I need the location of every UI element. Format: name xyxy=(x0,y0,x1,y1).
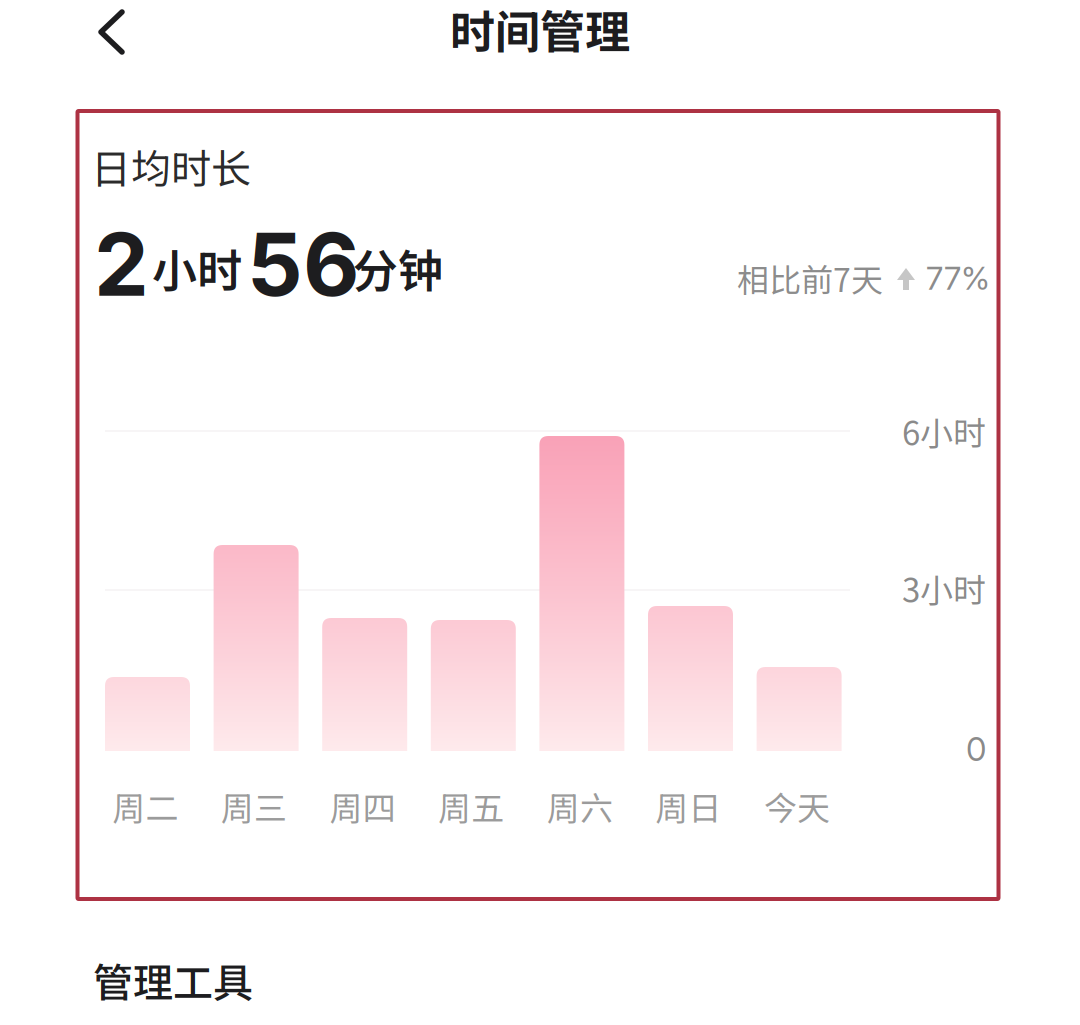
staticText: 小时 xyxy=(152,235,242,301)
staticText: 周四 xyxy=(330,782,396,830)
staticText: 管理工具 xyxy=(93,951,253,1009)
staticText: 今天 xyxy=(764,782,830,830)
staticText: 77% xyxy=(926,259,990,297)
staticText: 周二 xyxy=(112,782,178,830)
staticText: 3小时 xyxy=(902,564,986,612)
staticText: 周三 xyxy=(221,782,287,830)
staticText: 相比前7天 xyxy=(737,255,883,301)
staticText: 0 xyxy=(966,729,986,769)
staticText: 周五 xyxy=(438,782,504,830)
button[interactable]: 返回 xyxy=(63,0,159,65)
staticText: 时间管理 xyxy=(450,0,630,62)
staticText: 周六 xyxy=(547,782,613,830)
staticText: 6小时 xyxy=(902,407,986,455)
staticText: 日均时长 xyxy=(91,137,251,195)
staticText: 56 xyxy=(247,211,359,317)
staticText: 2 xyxy=(94,211,149,317)
staticText: 分钟 xyxy=(353,235,443,301)
staticText: 周日 xyxy=(655,782,721,830)
